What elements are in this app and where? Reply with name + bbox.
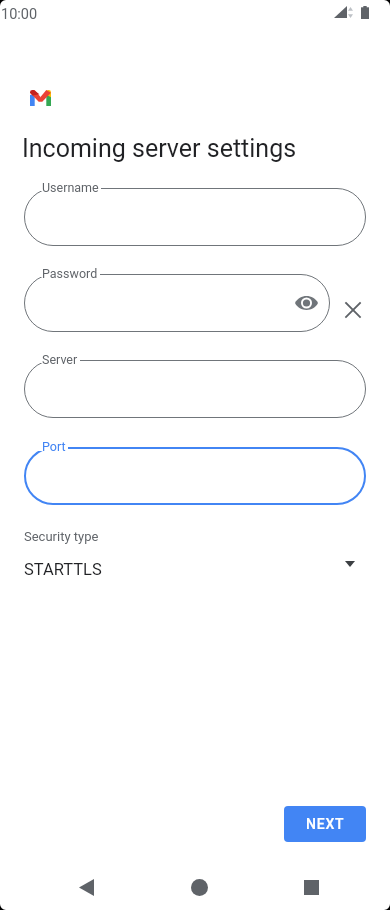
staticText: NEXT bbox=[306, 816, 345, 832]
button[interactable]: Username bbox=[24, 188, 366, 246]
button[interactable]: Show password bbox=[289, 286, 323, 320]
button[interactable]: NEXT bbox=[284, 806, 366, 842]
staticText: Username bbox=[42, 180, 99, 195]
button[interactable]: Back bbox=[62, 863, 110, 910]
button[interactable]: Clear password bbox=[337, 294, 369, 326]
button[interactable]: Password bbox=[24, 274, 330, 332]
button[interactable]: Security type STARTTLS bbox=[0, 550, 390, 586]
staticText: STARTTLS bbox=[24, 560, 102, 579]
button[interactable]: Recents bbox=[287, 863, 335, 910]
staticText: Security type bbox=[24, 529, 99, 544]
button[interactable]: Port bbox=[24, 447, 366, 505]
staticText: Password bbox=[42, 266, 98, 281]
staticText: Port bbox=[42, 439, 66, 454]
button[interactable]: Home bbox=[175, 863, 223, 910]
staticText: 10:00 bbox=[1, 6, 38, 23]
staticText: Server bbox=[42, 352, 78, 367]
button[interactable]: Server bbox=[24, 360, 366, 418]
staticText: Incoming server settings bbox=[22, 134, 297, 163]
